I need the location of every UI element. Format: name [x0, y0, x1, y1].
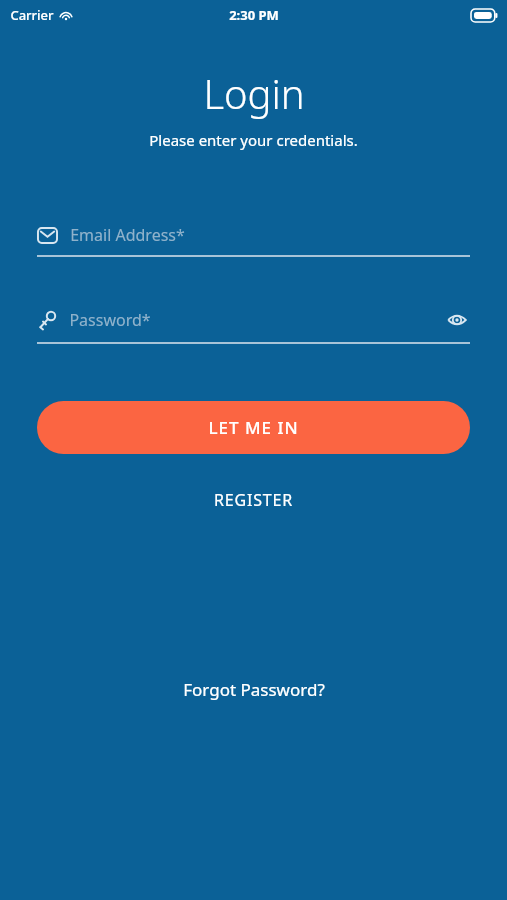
staticText: Forgot Password?: [183, 678, 325, 701]
button[interactable]: LET ME IN: [37, 401, 470, 454]
staticText: 2:30 PM: [229, 6, 279, 24]
staticText: LET ME IN: [208, 416, 299, 439]
staticText: REGISTER: [214, 489, 293, 511]
staticText: Password*: [69, 309, 151, 331]
button[interactable]: Email Address*: [37, 224, 470, 257]
staticText: Please enter your credentials.: [149, 130, 358, 150]
button[interactable]: REGISTER: [198, 483, 309, 517]
staticText: Login: [203, 66, 305, 120]
button[interactable]: Forgot Password?: [167, 672, 341, 707]
staticText: Carrier: [10, 6, 54, 24]
button[interactable]: Show password: [444, 307, 470, 333]
button[interactable]: Password*: [37, 307, 470, 344]
staticText: Email Address*: [70, 224, 185, 246]
